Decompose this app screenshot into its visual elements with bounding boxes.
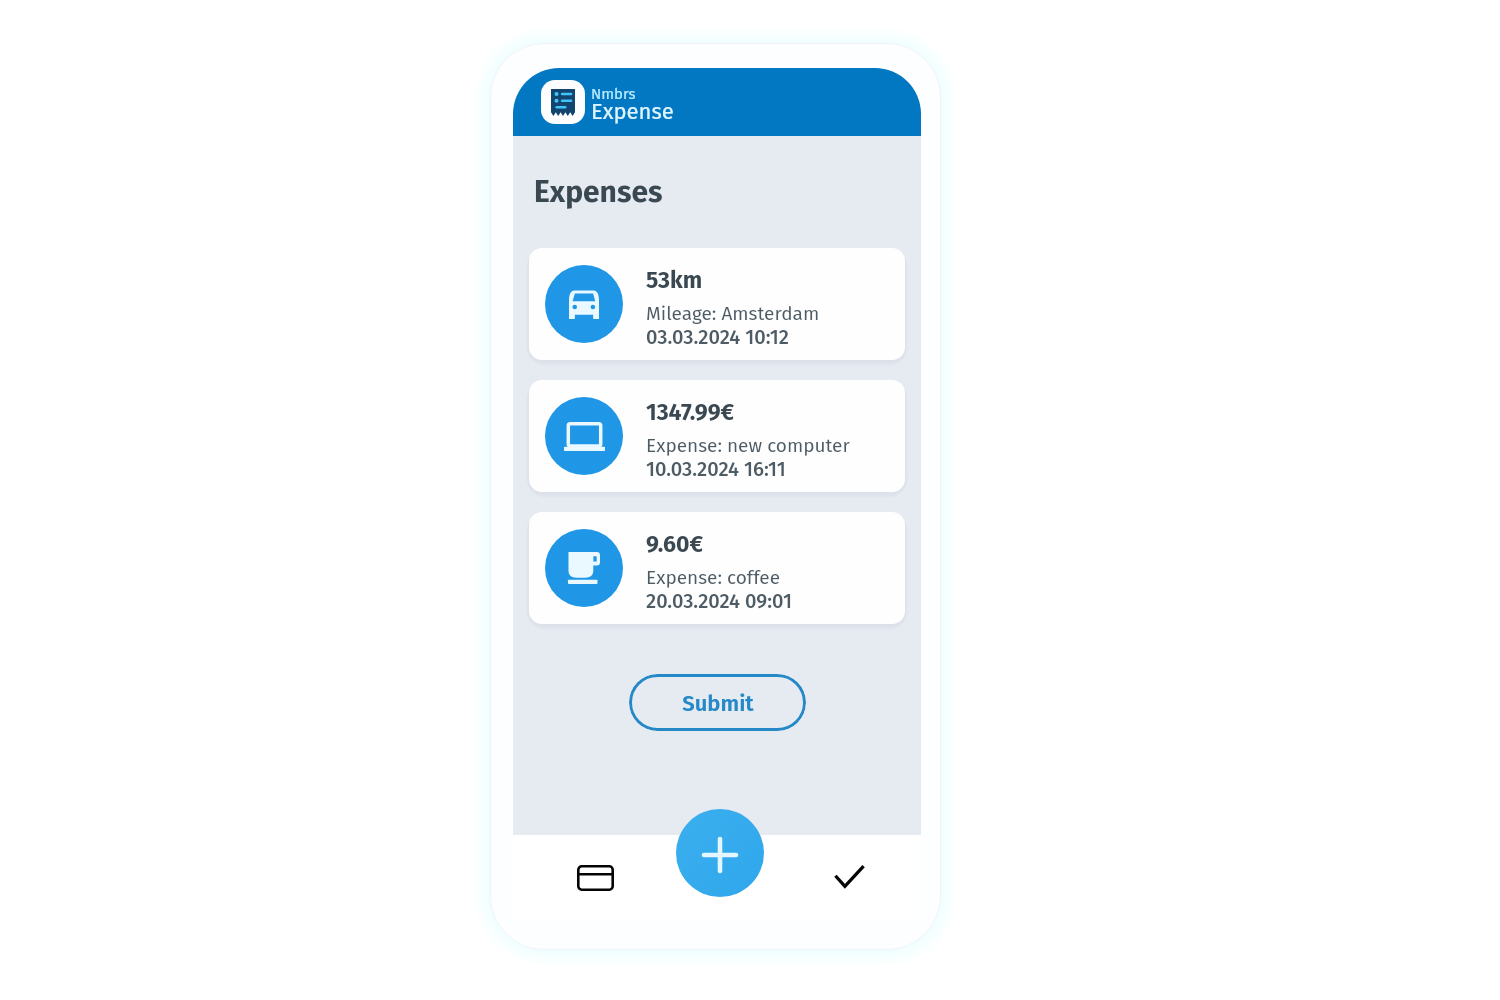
- button[interactable]: 9.60€: [529, 512, 905, 624]
- staticText: 10.03.2024 16:11: [646, 457, 786, 481]
- staticText: Nmbrs: [591, 85, 636, 103]
- staticText: Expense: new computer: [646, 434, 850, 457]
- button[interactable]: Add expense: [676, 809, 764, 897]
- button[interactable]: Submit: [629, 674, 806, 731]
- staticText: Expenses: [534, 174, 663, 210]
- staticText: 53km: [646, 266, 703, 294]
- staticText: 1347.99€: [646, 398, 735, 426]
- staticText: Expense: coffee: [646, 566, 781, 589]
- button[interactable]: Cards: [570, 853, 620, 903]
- button[interactable]: Approved: [824, 852, 874, 902]
- staticText: Mileage: Amsterdam: [646, 302, 820, 325]
- button[interactable]: 53km: [529, 248, 905, 360]
- staticText: 20.03.2024 09:01: [646, 589, 793, 613]
- staticText: Expense: [591, 98, 674, 124]
- staticText: Submit: [682, 690, 754, 716]
- button[interactable]: 1347.99€: [529, 380, 905, 492]
- staticText: 03.03.2024 10:12: [646, 325, 789, 349]
- staticText: 9.60€: [646, 530, 703, 558]
